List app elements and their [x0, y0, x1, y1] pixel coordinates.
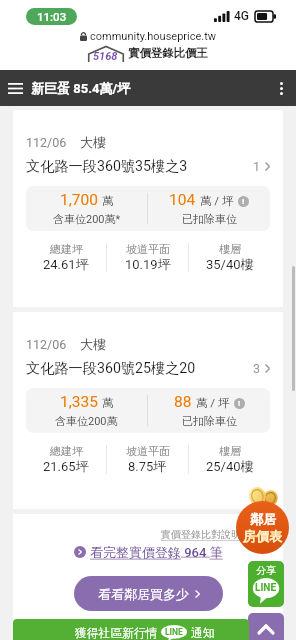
staticText: 已扣除車位 [182, 414, 237, 428]
staticText: 大樓 [80, 336, 106, 352]
staticText: 3 [253, 361, 261, 376]
staticText: 樓層 [219, 444, 241, 458]
staticText: 鄰居 [250, 511, 276, 527]
staticText: 1,335 [60, 393, 98, 411]
button[interactable]: More options [266, 70, 296, 106]
staticText: ! [238, 399, 241, 408]
button[interactable]: Scroll to top [248, 613, 284, 640]
staticText: 已扣除車位 [182, 212, 237, 226]
button[interactable]: 鄰居房價表 [236, 501, 289, 554]
staticText: 25/40樓 [206, 458, 254, 474]
staticText: 112/06 [26, 337, 67, 352]
button[interactable]: 獲得社區新行情 [13, 619, 249, 640]
staticText: 獲得社區新行情 [75, 626, 158, 640]
staticText: 4G [234, 9, 249, 23]
staticText: community.houseprice.tw [90, 30, 217, 43]
staticText: 總建坪 [50, 242, 83, 256]
staticText: 5168 [93, 50, 118, 63]
staticText: 112/06 [26, 135, 67, 150]
staticText: 看完整實價登錄 964 筆 [90, 544, 223, 560]
staticText: 新巨蛋 85.4萬/坪 [31, 80, 131, 96]
staticText: 8.75坪 [128, 458, 167, 474]
staticText: 含車位200萬* [53, 212, 121, 226]
staticText: 萬 / 坪 [196, 396, 230, 410]
staticText: 88 [174, 393, 192, 411]
staticText: 含車位200萬 [55, 414, 118, 428]
staticText: 看看鄰居買多少 [98, 586, 189, 602]
staticText: 萬 [102, 194, 114, 208]
staticText: 35/40樓 [206, 256, 254, 272]
button[interactable]: Menu [0, 70, 31, 106]
staticText: 房價表 [243, 528, 282, 544]
staticText: 11:03 [37, 10, 67, 23]
staticText: 實價登錄比對說明 [161, 528, 241, 541]
staticText: 坡道平面 [126, 444, 170, 458]
staticText: 分享 [256, 564, 276, 577]
button[interactable]: 看看鄰居買多少 [74, 576, 223, 611]
staticText: 實價登錄比價王 [128, 46, 208, 60]
staticText: 文化路一段360號25樓之20 [26, 359, 196, 377]
staticText: LINE [255, 582, 277, 594]
staticText: 1 [253, 159, 261, 174]
button[interactable]: 實價登錄比對說明 [161, 528, 241, 541]
staticText: 21.65坪 [43, 458, 89, 474]
staticText: 萬 / 坪 [200, 194, 234, 208]
staticText: 24.61坪 [43, 256, 89, 272]
staticText: 樓層 [219, 242, 241, 256]
staticText: 萬 [102, 396, 114, 410]
staticText: 坡道平面 [126, 242, 170, 256]
staticText: 1,700 [60, 191, 98, 209]
staticText: 10.19坪 [125, 256, 171, 272]
button[interactable]: 分享 LINE [248, 561, 284, 607]
staticText: 大樓 [80, 134, 106, 150]
staticText: LINE [165, 627, 183, 637]
staticText: 總建坪 [50, 444, 83, 458]
staticText: ! [242, 197, 245, 206]
staticText: 104 [169, 191, 196, 209]
staticText: 通知 [191, 626, 215, 640]
button[interactable]: 112/06 [13, 110, 283, 307]
button[interactable]: 112/06 [13, 312, 283, 509]
staticText: 文化路一段360號35樓之3 [26, 157, 188, 175]
button[interactable]: 看完整實價登錄 964 筆 [74, 544, 223, 560]
